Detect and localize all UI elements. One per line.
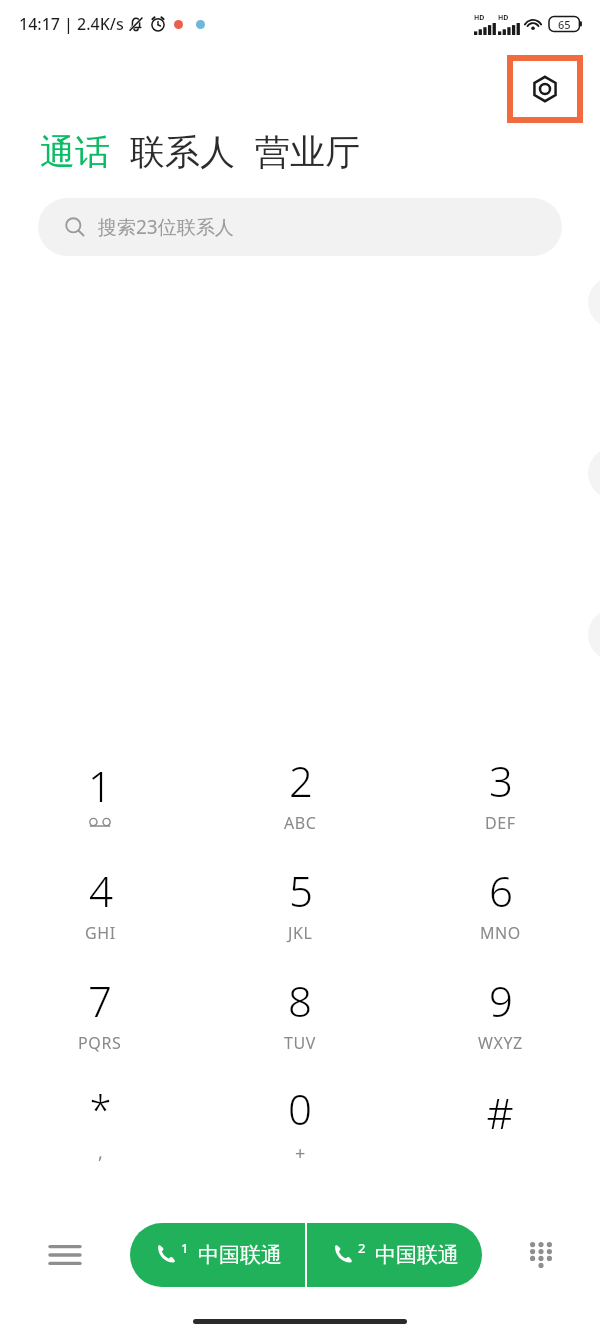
button[interactable]: 1 bbox=[0, 738, 200, 848]
staticText: 6 bbox=[489, 862, 513, 919]
button[interactable]: 6 bbox=[400, 848, 600, 958]
staticText: 2 bbox=[358, 1239, 366, 1257]
button[interactable]: Dialpad bbox=[482, 1221, 600, 1289]
button[interactable]: 5 bbox=[200, 848, 400, 958]
staticText: DEF bbox=[485, 812, 516, 834]
staticText: 14:17 | 2.4K/s bbox=[19, 13, 124, 35]
button[interactable]: Settings bbox=[513, 61, 577, 117]
staticText: 中国联通 bbox=[375, 1242, 459, 1268]
staticText: 搜索23位联系人 bbox=[98, 214, 234, 240]
button[interactable]: 搜索23位联系人 bbox=[38, 198, 562, 256]
staticText: 65 bbox=[558, 17, 571, 32]
button[interactable]: 0 bbox=[200, 1068, 400, 1178]
staticText: 2 bbox=[289, 752, 313, 809]
staticText: HD bbox=[474, 13, 485, 23]
button[interactable]: 2 bbox=[200, 738, 400, 848]
staticText: 中国联通 bbox=[198, 1242, 282, 1268]
button[interactable]: 2 bbox=[307, 1223, 482, 1287]
staticText: 5 bbox=[289, 862, 313, 919]
staticText: 4 bbox=[89, 862, 113, 919]
staticText: GHI bbox=[85, 922, 116, 944]
button[interactable]: 3 bbox=[400, 738, 600, 848]
staticText: TUV bbox=[284, 1032, 316, 1054]
button[interactable]: 联系人 bbox=[130, 130, 235, 174]
button[interactable]: Menu bbox=[0, 1221, 130, 1289]
staticText: HD bbox=[498, 13, 509, 23]
staticText: + bbox=[295, 1141, 306, 1166]
button[interactable]: # bbox=[400, 1068, 600, 1178]
button[interactable]: 7 bbox=[0, 958, 200, 1068]
staticText: 3 bbox=[489, 752, 513, 809]
button[interactable]: 营业厅 bbox=[255, 130, 360, 174]
staticText: 1 bbox=[181, 1239, 189, 1257]
staticText: 9 bbox=[489, 972, 513, 1029]
staticText: WXYZ bbox=[478, 1032, 523, 1054]
staticText: MNO bbox=[480, 922, 521, 944]
staticText: 1 bbox=[88, 757, 112, 814]
button[interactable]: 8 bbox=[200, 958, 400, 1068]
button[interactable]: 1 bbox=[130, 1223, 305, 1287]
staticText: # bbox=[486, 1084, 514, 1141]
button[interactable]: 4 bbox=[0, 848, 200, 958]
staticText: ABC bbox=[284, 812, 317, 834]
button[interactable]: 通话 bbox=[40, 130, 110, 174]
staticText: 8 bbox=[288, 972, 312, 1029]
staticText: PQRS bbox=[78, 1032, 122, 1054]
button[interactable]: 9 bbox=[400, 958, 600, 1068]
staticText: * bbox=[89, 1082, 112, 1136]
button[interactable]: * bbox=[0, 1068, 200, 1178]
staticText: 7 bbox=[88, 972, 112, 1029]
staticText: JKL bbox=[288, 922, 313, 944]
staticText: 0 bbox=[288, 1080, 312, 1137]
staticText: , bbox=[98, 1140, 104, 1165]
